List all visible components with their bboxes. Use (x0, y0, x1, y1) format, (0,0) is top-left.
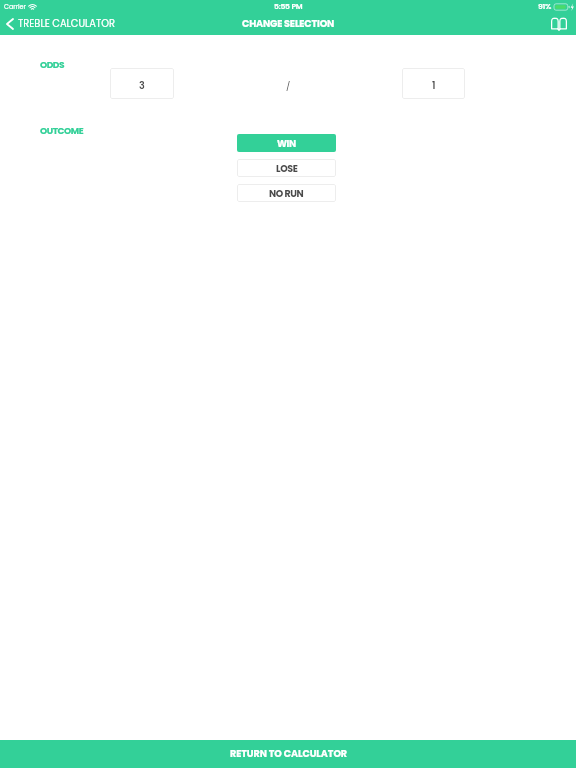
button[interactable]: TREBLE CALCULATOR (0, 16, 123, 34)
staticText: OUTCOME (40, 124, 84, 137)
staticText: Carrier (4, 2, 26, 11)
staticText: 3 (139, 79, 145, 92)
staticText: ODDS (40, 58, 65, 71)
staticText: / (286, 80, 291, 93)
staticText: 1 (432, 79, 436, 92)
staticText: 91% (538, 1, 552, 12)
button[interactable]: 3 (110, 68, 174, 99)
staticText: NO RUN (269, 187, 304, 200)
button[interactable]: LOSE (237, 159, 336, 177)
button[interactable]: WIN (237, 134, 336, 152)
button[interactable]: NO RUN (237, 184, 336, 202)
staticText: CHANGE SELECTION (242, 17, 335, 30)
staticText: WIN (277, 137, 296, 150)
button[interactable]: 1 (402, 68, 465, 99)
staticText: 5:55 PM (274, 1, 303, 12)
staticText: RETURN TO CALCULATOR (230, 747, 347, 760)
staticText: LOSE (276, 162, 298, 175)
button[interactable]: Help (543, 14, 576, 35)
button[interactable]: RETURN TO CALCULATOR (0, 740, 576, 768)
staticText: TREBLE CALCULATOR (18, 17, 115, 31)
